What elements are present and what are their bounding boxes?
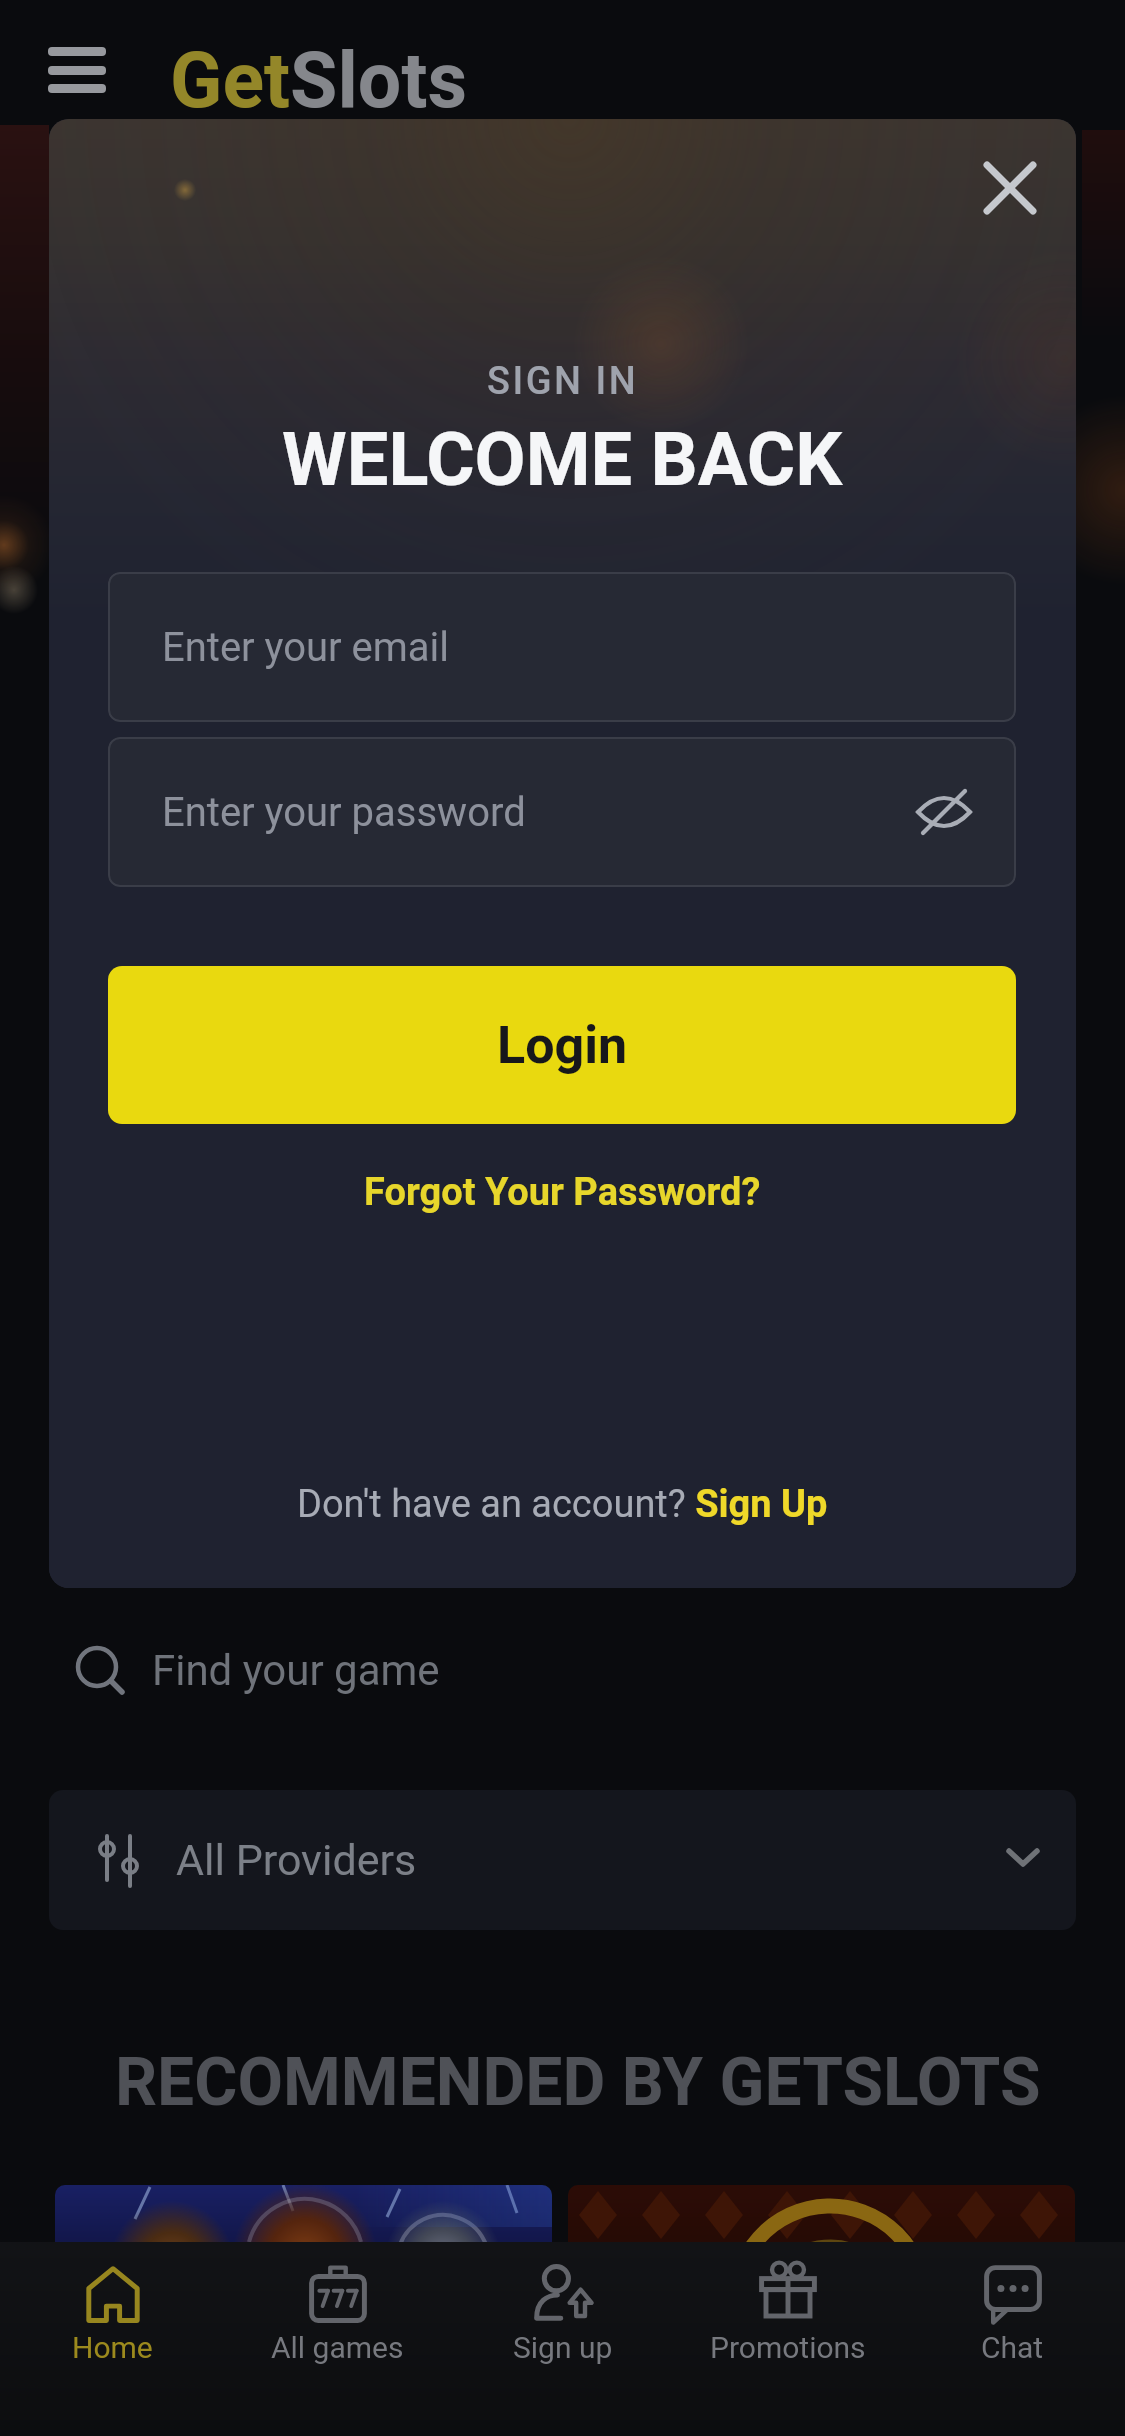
staticText: Don't have an account? Sign Up: [297, 1482, 828, 1527]
button[interactable]: Chat: [900, 2242, 1125, 2436]
staticText: WELCOME BACK: [282, 416, 843, 496]
button[interactable]: Home: [0, 2242, 225, 2436]
button[interactable]: All games: [225, 2242, 450, 2436]
button[interactable]: [969, 147, 1051, 229]
staticText: Home: [72, 2330, 153, 2365]
staticText: SIGN IN: [487, 359, 639, 404]
button[interactable]: [568, 2185, 1075, 2295]
button[interactable]: Promotions: [675, 2242, 900, 2436]
button[interactable]: Login: [108, 966, 1016, 1124]
staticText: Chat: [981, 2330, 1044, 2365]
staticText: Find your game: [152, 1646, 440, 1695]
staticText: All Providers: [176, 1835, 417, 1885]
staticText: Login: [497, 1015, 628, 1076]
staticText: All games: [271, 2330, 404, 2365]
staticText: Promotions: [710, 2330, 866, 2365]
staticText: Enter your password: [162, 789, 526, 836]
button[interactable]: All Providers: [49, 1790, 1076, 1930]
button[interactable]: Enter your email: [108, 572, 1016, 722]
button[interactable]: Sign up: [450, 2242, 675, 2436]
button[interactable]: [48, 47, 106, 93]
staticText: Forgot Your Password?: [364, 1170, 761, 1215]
staticText: Sign up: [513, 2330, 613, 2365]
staticText: GetSlots: [170, 36, 468, 112]
staticText: Enter your email: [162, 624, 450, 671]
staticText: RECOMMENDED BY GETSLOTS: [115, 2044, 1041, 2120]
button[interactable]: GetSlots: [170, 36, 468, 112]
button[interactable]: [55, 2185, 552, 2295]
button[interactable]: Enter your password: [108, 737, 1016, 887]
button[interactable]: Find your game: [60, 1620, 520, 1720]
button[interactable]: Forgot Your Password?: [362, 1162, 762, 1222]
button[interactable]: Don't have an account? Sign Up: [49, 1474, 1076, 1534]
